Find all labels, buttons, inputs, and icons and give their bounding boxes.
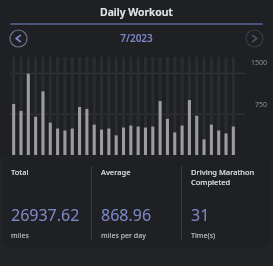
staticText: Time(s) (191, 231, 216, 241)
staticText: miles per day (101, 231, 146, 241)
button[interactable]: Previous month (9, 29, 28, 48)
staticText: 31 (191, 204, 210, 226)
button[interactable]: Total (2, 158, 91, 248)
staticText: miles (11, 231, 29, 241)
staticText: 1500 (251, 58, 268, 68)
staticText: 26937.62 (11, 204, 80, 226)
staticText: Average (101, 167, 131, 177)
button[interactable]: Driving Marathon Completed (182, 158, 271, 248)
button[interactable]: Average (92, 158, 181, 248)
staticText: Total (11, 167, 29, 177)
staticText: 7/2023 (120, 31, 153, 45)
staticText: 868.96 (101, 204, 152, 226)
staticText: Driving Marathon Completed (191, 167, 255, 187)
staticText: Daily Workout (100, 5, 173, 19)
staticText: 750 (255, 100, 268, 110)
button[interactable]: Next month (245, 29, 264, 48)
